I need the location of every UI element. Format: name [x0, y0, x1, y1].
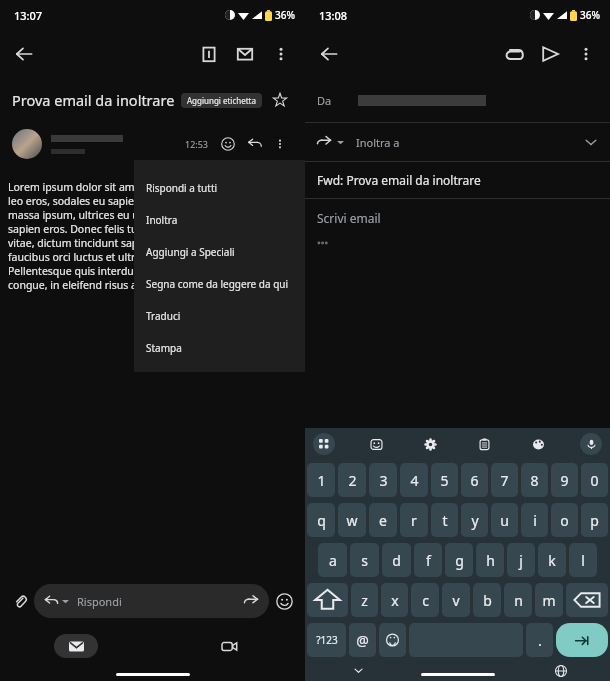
button[interactable]: Add reaction	[215, 131, 241, 157]
button[interactable]: Themes	[526, 432, 550, 456]
button[interactable]: Rispondi a tutti	[134, 172, 305, 204]
button[interactable]: Scrivi email	[305, 199, 610, 237]
button[interactable]: n	[504, 583, 532, 617]
button[interactable]: Emoji	[269, 586, 299, 616]
button[interactable]: Rispondi	[34, 584, 269, 618]
button[interactable]: 4	[400, 463, 428, 497]
button[interactable]: 9	[551, 463, 578, 497]
button[interactable]: 7	[491, 463, 518, 497]
staticText: 1	[317, 471, 326, 490]
button[interactable]: Aggiungi a Speciali	[134, 236, 305, 268]
staticText: e	[379, 511, 387, 530]
button[interactable]: More options	[263, 36, 299, 72]
button[interactable]: x	[381, 583, 408, 617]
button[interactable]: y	[461, 503, 488, 537]
button[interactable]: i	[521, 503, 548, 537]
staticText: Stampa	[146, 341, 182, 355]
staticText: Rispondi a tutti	[146, 181, 218, 195]
button[interactable]: Segna come da leggere da qui	[134, 268, 305, 300]
button[interactable]: j	[507, 543, 535, 577]
staticText: t	[442, 511, 448, 530]
button[interactable]: Enter	[556, 623, 608, 657]
button[interactable]: e	[369, 503, 397, 537]
button[interactable]: b	[473, 583, 501, 617]
button[interactable]: p	[581, 503, 608, 537]
staticText: Aggiungi etichetta	[187, 95, 256, 106]
staticText: 36%	[580, 8, 600, 22]
button[interactable]: f	[414, 543, 442, 577]
button[interactable]: o	[551, 503, 578, 537]
button[interactable]: Fwd: Prova email da inoltrare	[305, 162, 610, 198]
button[interactable]: q	[307, 503, 335, 537]
button[interactable]: Inoltra	[134, 204, 305, 236]
button[interactable]: d	[382, 543, 411, 577]
button[interactable]: Backspace	[566, 583, 608, 617]
button[interactable]: Aggiungi etichetta	[181, 93, 262, 108]
button[interactable]: w	[338, 503, 366, 537]
button[interactable]: Hide keyboard	[347, 660, 369, 681]
staticText: p	[590, 511, 599, 530]
button[interactable]: Sender avatar	[12, 129, 42, 159]
button[interactable]: l	[569, 543, 597, 577]
button[interactable]: h	[476, 543, 504, 577]
button[interactable]: Mail	[54, 634, 98, 658]
staticText: z	[361, 591, 368, 610]
staticText: j	[519, 551, 523, 570]
button[interactable]: 2	[338, 463, 366, 497]
button[interactable]: Settings	[418, 432, 442, 456]
button[interactable]: Message options	[267, 131, 293, 157]
button[interactable]: v	[442, 583, 470, 617]
staticText: h	[486, 551, 495, 570]
staticText: y	[471, 511, 479, 530]
button[interactable]: t	[431, 503, 458, 537]
button[interactable]: Voice input	[580, 433, 602, 455]
button[interactable]: Meet	[207, 634, 251, 658]
button[interactable]: 8	[521, 463, 548, 497]
button[interactable]: 0	[581, 463, 608, 497]
button[interactable]: g	[445, 543, 473, 577]
button[interactable]: c	[411, 583, 439, 617]
button[interactable]: s	[350, 543, 379, 577]
staticText: Inoltra a	[356, 135, 400, 150]
button[interactable]: Toolbox	[313, 433, 335, 455]
staticText: 2	[348, 471, 357, 490]
button[interactable]: u	[491, 503, 518, 537]
button[interactable]: Delete	[191, 36, 227, 72]
button[interactable]: Inoltra a	[305, 123, 610, 161]
staticText: Traduci	[146, 309, 181, 323]
button[interactable]: Back	[6, 36, 42, 72]
button[interactable]: Clipboard	[472, 432, 496, 456]
button[interactable]: Attach	[496, 36, 532, 72]
button[interactable]: r	[400, 503, 428, 537]
staticText: sapien eros. Donec felis turpis, aliquet	[8, 222, 196, 236]
button[interactable]: @	[349, 623, 376, 657]
button[interactable]: 1	[307, 463, 335, 497]
button[interactable]: Stampa	[134, 332, 305, 364]
staticText: q	[317, 511, 326, 530]
button[interactable]: k	[538, 543, 566, 577]
button[interactable]: .	[526, 623, 553, 657]
button[interactable]: Emoji	[379, 623, 406, 657]
button[interactable]: a	[318, 543, 347, 577]
button[interactable]: Change language	[550, 660, 572, 681]
button[interactable]: ?123	[307, 623, 346, 657]
button[interactable]: Shift	[307, 583, 348, 617]
staticText: faucibus orci luctus et ultrices posuere	[8, 250, 198, 264]
button[interactable]: Send	[532, 36, 568, 72]
button[interactable]: Mark unread	[227, 36, 263, 72]
button[interactable]: Back	[311, 36, 347, 72]
button[interactable]: Traduci	[134, 300, 305, 332]
button[interactable]: Star	[267, 87, 293, 113]
button[interactable]: Attach file	[6, 587, 34, 615]
staticText: ?123	[316, 633, 338, 647]
button[interactable]: More options	[568, 36, 604, 72]
button[interactable]: 6	[461, 463, 488, 497]
button[interactable]: Stickers	[364, 432, 388, 456]
button[interactable]: m	[535, 583, 563, 617]
staticText: 4	[410, 471, 419, 490]
button[interactable]: 3	[369, 463, 397, 497]
button[interactable]: 5	[431, 463, 458, 497]
button[interactable]: z	[351, 583, 378, 617]
button[interactable]: Reply	[241, 131, 267, 157]
